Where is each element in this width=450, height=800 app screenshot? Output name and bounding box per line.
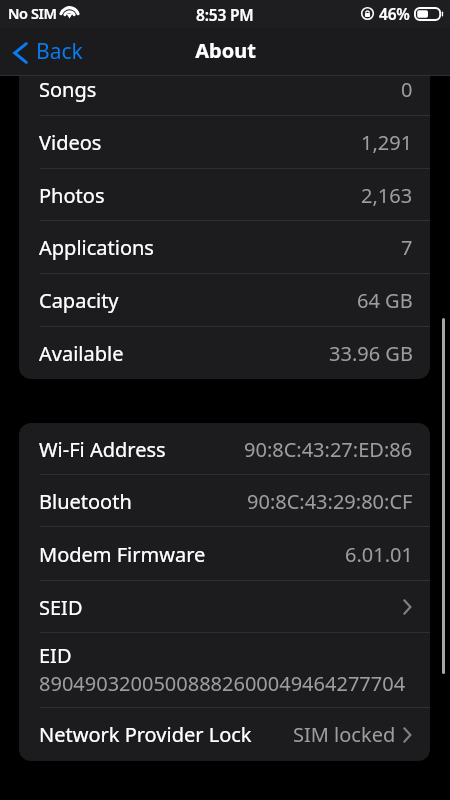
staticText: 64 GB bbox=[357, 287, 413, 314]
button[interactable]: Back bbox=[13, 38, 83, 67]
staticText: About bbox=[195, 37, 256, 64]
staticText: 1,291 bbox=[361, 129, 413, 156]
staticText: EID bbox=[39, 642, 72, 669]
other: Back bbox=[13, 42, 28, 64]
staticText: 90:8C:43:29:80:CF bbox=[247, 488, 413, 515]
staticText: Bluetooth bbox=[39, 488, 132, 515]
staticText: Songs bbox=[39, 76, 97, 103]
button[interactable]: EID bbox=[19, 633, 430, 708]
button[interactable]: Applications bbox=[19, 221, 430, 274]
button[interactable]: Videos bbox=[19, 116, 430, 169]
button[interactable]: Photos bbox=[19, 169, 430, 221]
staticText: Applications bbox=[39, 234, 154, 261]
staticText: Wi-Fi Address bbox=[39, 436, 166, 463]
staticText: SEID bbox=[39, 594, 83, 621]
staticText: Network Provider Lock bbox=[39, 721, 252, 748]
staticText: 33.96 GB bbox=[329, 340, 413, 367]
staticText: 6.01.01 bbox=[345, 541, 413, 568]
staticText: Back bbox=[36, 37, 83, 66]
button[interactable]: Bluetooth bbox=[19, 475, 430, 527]
staticText: 89049032005008882600049464277704 bbox=[39, 670, 406, 697]
staticText: Photos bbox=[39, 182, 105, 209]
button[interactable]: Songs bbox=[19, 63, 430, 116]
button[interactable]: Modem Firmware bbox=[19, 527, 430, 581]
button[interactable]: Network Provider Lock bbox=[19, 708, 430, 761]
staticText: 8:53 PM bbox=[196, 4, 254, 25]
button[interactable]: Available bbox=[19, 327, 430, 379]
staticText: Capacity bbox=[39, 287, 119, 314]
button[interactable]: SEID bbox=[19, 581, 430, 633]
staticText: 7 bbox=[401, 234, 413, 261]
button[interactable]: Wi-Fi Address bbox=[19, 423, 430, 475]
staticText: 90:8C:43:27:ED:86 bbox=[244, 436, 413, 463]
staticText: 2,163 bbox=[361, 182, 413, 209]
staticText: Available bbox=[39, 340, 124, 367]
staticText: Videos bbox=[39, 129, 102, 156]
staticText: No SIM bbox=[8, 3, 57, 23]
button[interactable]: Capacity bbox=[19, 274, 430, 327]
staticText: 46% bbox=[379, 3, 410, 24]
staticText: Modem Firmware bbox=[39, 541, 206, 568]
staticText: 0 bbox=[401, 76, 413, 103]
staticText: SIM locked bbox=[293, 721, 396, 748]
